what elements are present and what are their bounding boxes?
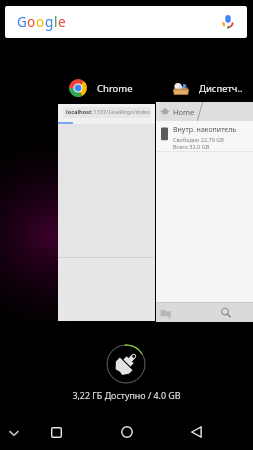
button[interactable]: Recent apps [40,414,73,450]
staticText: Home [173,107,195,117]
staticText: Внутр. накопитель [173,125,237,135]
button[interactable]: Home [110,414,143,450]
button[interactable]: Clear all recent apps [106,344,146,384]
button[interactable]: localhost [58,104,155,321]
staticText: Chrome [97,82,133,95]
staticText: localhost [66,108,92,116]
staticText: g [45,13,54,31]
button[interactable]: Voice search [219,12,237,30]
button[interactable]: New folder [160,307,172,319]
staticText: o [27,13,36,31]
staticText: G [17,13,27,31]
staticText: l [54,13,58,31]
staticText: e [58,13,66,31]
staticText: 3,22 ГБ Доступно / 4.0 GB [0,389,253,401]
staticText: :1337/LeadArgo/index [92,108,151,116]
staticText: o [36,13,45,31]
button[interactable]: Диспетч.. [172,79,243,97]
staticText: Всего 32.0 GB [173,143,210,150]
staticText: Диспетч.. [199,82,243,95]
button[interactable]: Back [180,414,213,450]
button[interactable]: G [5,6,247,38]
button[interactable]: Hide keyboard [0,414,28,450]
staticText: Свободно 22.79 GB [173,136,224,143]
button[interactable]: Chrome [69,79,133,97]
button[interactable]: Home [156,102,253,322]
button[interactable]: Search [220,307,232,319]
